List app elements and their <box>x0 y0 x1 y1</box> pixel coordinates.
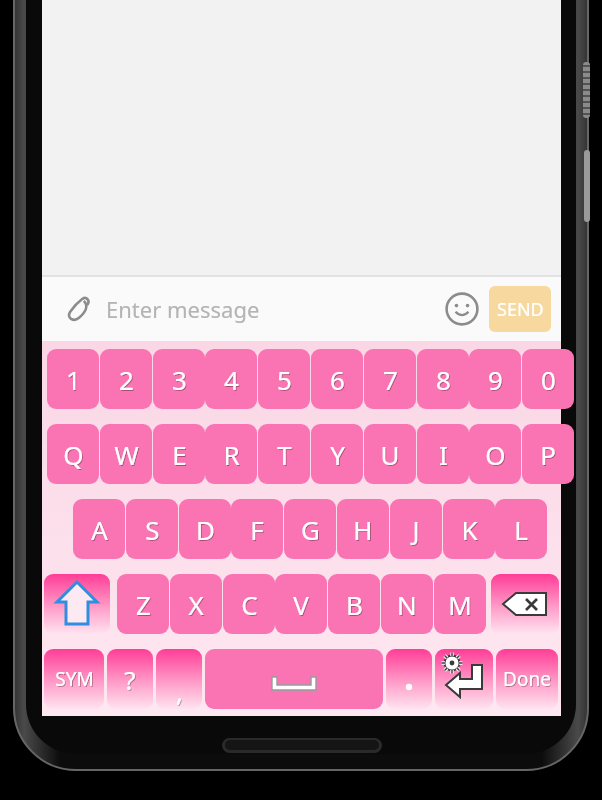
button[interactable]: 1 <box>47 349 99 409</box>
staticText: 9 <box>488 362 503 397</box>
staticText: 3 <box>172 362 187 397</box>
staticText: B <box>346 587 363 622</box>
staticText: G <box>302 513 321 548</box>
staticText: H <box>353 512 373 547</box>
staticText: N <box>398 588 418 623</box>
button[interactable]: SYM <box>44 649 104 709</box>
button[interactable]: D <box>179 499 231 559</box>
staticText: SEND <box>497 297 544 322</box>
button[interactable]: Enter and settings <box>435 649 493 709</box>
button[interactable]: O <box>469 424 521 484</box>
staticText: N <box>397 587 417 622</box>
staticText: F <box>250 512 264 547</box>
staticText: 9 <box>489 363 504 398</box>
button[interactable]: C <box>223 574 275 634</box>
button[interactable]: E <box>153 424 205 484</box>
button[interactable]: 6 <box>311 349 363 409</box>
staticText: G <box>301 512 320 547</box>
button[interactable]: B <box>328 574 380 634</box>
button[interactable]: K <box>443 499 495 559</box>
button[interactable]: Emoji <box>441 288 483 330</box>
button[interactable]: H <box>337 499 389 559</box>
other: Space <box>205 649 383 709</box>
staticText: 1 <box>66 362 81 397</box>
staticText: T <box>277 437 292 472</box>
staticText: Q <box>63 437 84 472</box>
staticText: F <box>251 513 265 548</box>
staticText: Q <box>64 438 85 473</box>
button[interactable]: Enter message <box>106 277 441 341</box>
button[interactable]: T <box>258 424 310 484</box>
button[interactable]: I <box>417 424 469 484</box>
button[interactable]: Backspace <box>491 574 559 634</box>
staticText: 2 <box>119 362 134 397</box>
button[interactable]: P <box>522 424 574 484</box>
button[interactable]: A <box>73 499 125 559</box>
staticText: 6 <box>330 362 345 397</box>
button[interactable]: , <box>156 649 202 709</box>
staticText: Y <box>330 437 345 472</box>
button[interactable]: N <box>381 574 433 634</box>
button[interactable]: 4 <box>205 349 257 409</box>
staticText: X <box>188 587 204 622</box>
button[interactable]: Attach file <box>58 290 96 328</box>
button[interactable]: V <box>275 574 327 634</box>
button[interactable]: F <box>231 499 283 559</box>
staticText: 6 <box>331 363 346 398</box>
staticText: J <box>413 513 421 548</box>
staticText: E <box>172 437 187 472</box>
button[interactable]: 2 <box>100 349 152 409</box>
staticText: U <box>380 437 400 472</box>
button[interactable]: R <box>205 424 257 484</box>
button[interactable] <box>386 649 432 709</box>
staticText: 1 <box>67 363 82 398</box>
button[interactable]: W <box>100 424 152 484</box>
staticText: Done <box>504 667 552 693</box>
staticText: W <box>115 438 140 473</box>
staticText: 4 <box>225 363 240 398</box>
button[interactable]: 9 <box>469 349 521 409</box>
staticText: H <box>354 513 374 548</box>
staticText: M <box>448 587 472 622</box>
staticText: 8 <box>437 363 452 398</box>
staticText: C <box>241 587 258 622</box>
staticText: SYM <box>55 666 94 692</box>
staticText: J <box>412 512 420 547</box>
staticText: 3 <box>173 363 188 398</box>
button[interactable]: 8 <box>417 349 469 409</box>
button[interactable]: 0 <box>522 349 574 409</box>
button[interactable]: Done <box>496 649 558 709</box>
button[interactable]: L <box>495 499 547 559</box>
button[interactable]: J <box>390 499 442 559</box>
button[interactable]: Space <box>205 649 383 709</box>
button[interactable]: X <box>170 574 222 634</box>
staticText: P <box>540 437 556 472</box>
staticText: D <box>197 513 216 548</box>
button[interactable]: Q <box>47 424 99 484</box>
staticText: E <box>173 438 188 473</box>
button[interactable]: ? <box>107 649 153 709</box>
button[interactable]: Z <box>117 574 169 634</box>
button[interactable]: G <box>284 499 336 559</box>
staticText: T <box>278 438 293 473</box>
button[interactable]: Shift <box>44 574 110 634</box>
button[interactable]: M <box>434 574 486 634</box>
other: Shift <box>44 574 110 634</box>
staticText: O <box>486 438 507 473</box>
button[interactable]: SEND <box>489 286 551 332</box>
staticText: L <box>515 513 529 548</box>
button[interactable]: U <box>364 424 416 484</box>
staticText: SYM <box>56 667 95 693</box>
staticText: 0 <box>542 363 557 398</box>
staticText: S <box>145 512 160 547</box>
staticText: K <box>461 512 478 547</box>
button[interactable]: S <box>126 499 178 559</box>
button[interactable]: 5 <box>258 349 310 409</box>
staticText: Y <box>331 438 346 473</box>
button[interactable]: Y <box>311 424 363 484</box>
staticText: U <box>381 438 401 473</box>
button[interactable]: 7 <box>364 349 416 409</box>
staticText: ? <box>125 663 137 698</box>
staticText: V <box>293 587 309 622</box>
button[interactable]: 3 <box>153 349 205 409</box>
